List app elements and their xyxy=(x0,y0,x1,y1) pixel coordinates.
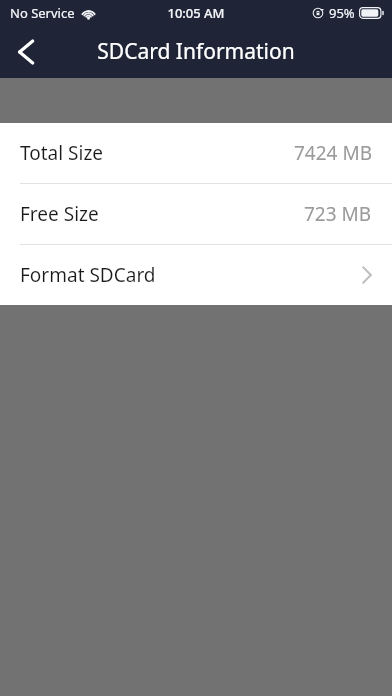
staticText: Free Size xyxy=(20,201,99,227)
staticText: No Service xyxy=(10,4,75,22)
button[interactable]: Format SDCard xyxy=(0,245,392,305)
staticText: 10:05 AM xyxy=(167,4,225,22)
staticText: SDCard Information xyxy=(97,37,295,66)
button[interactable]: Back xyxy=(0,25,52,78)
staticText: 7424 MB xyxy=(294,140,372,166)
staticText: 723 MB xyxy=(304,201,372,227)
staticText: 95% xyxy=(329,4,355,22)
staticText: Total Size xyxy=(20,140,104,166)
button[interactable]: Total Size xyxy=(0,123,392,183)
button[interactable]: Free Size xyxy=(0,184,392,244)
staticText: Format SDCard xyxy=(20,262,156,288)
